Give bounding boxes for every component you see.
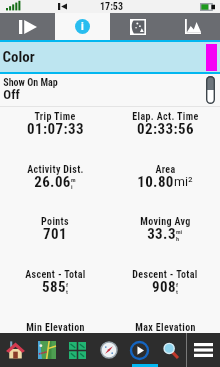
button[interactable]: Info	[55, 13, 110, 40]
staticText: Elap. Act. Time	[132, 111, 199, 123]
staticText: 701	[43, 225, 67, 243]
staticText: 585	[42, 278, 66, 296]
button[interactable]: Map	[110, 13, 165, 40]
button[interactable]: Map	[31, 333, 62, 367]
button[interactable]: Compass	[93, 333, 124, 367]
button[interactable]: Menu	[187, 333, 220, 367]
staticText: f	[66, 281, 69, 288]
staticText: Trip Time	[34, 111, 76, 123]
staticText: Color	[2, 48, 35, 66]
staticText: i	[71, 183, 73, 190]
staticText: h	[176, 235, 180, 242]
button[interactable]: Color	[0, 42, 220, 72]
button[interactable]: Home	[0, 333, 31, 367]
staticText: Max Elevation	[135, 322, 196, 334]
button[interactable]: Show On Map	[0, 74, 220, 106]
staticText: mi²	[174, 174, 193, 189]
staticText: Activity Dist.	[27, 164, 84, 176]
button[interactable]: Record	[124, 333, 155, 367]
staticText: 17:53	[100, 1, 123, 13]
staticText: Points	[41, 216, 69, 228]
staticText: mi	[176, 228, 183, 235]
staticText: t	[66, 288, 68, 295]
staticText: 908	[152, 278, 176, 296]
staticText: 10.80	[137, 173, 174, 191]
staticText: Show On Map	[3, 77, 58, 89]
staticText: Area	[155, 164, 176, 176]
button[interactable]: Waypoints	[62, 333, 93, 367]
staticText: Min Elevation	[26, 322, 85, 334]
staticText: 02:33:56	[137, 120, 194, 138]
staticText: Off	[3, 87, 20, 102]
button[interactable]: Search	[155, 333, 186, 367]
staticText: Ascent - Total	[25, 269, 86, 281]
staticText: 33.3	[147, 225, 176, 243]
staticText: Moving Avg	[140, 216, 191, 228]
staticText: Descent - Total	[132, 269, 198, 281]
staticText: t	[176, 288, 178, 295]
staticText: 26.06	[34, 173, 71, 191]
staticText: i	[81, 20, 84, 33]
staticText: 01:07:33	[27, 120, 84, 138]
staticText: m	[71, 176, 76, 183]
staticText: f	[176, 281, 179, 288]
button[interactable]: Timer	[0, 13, 55, 40]
button[interactable]: Elevation	[165, 13, 220, 40]
